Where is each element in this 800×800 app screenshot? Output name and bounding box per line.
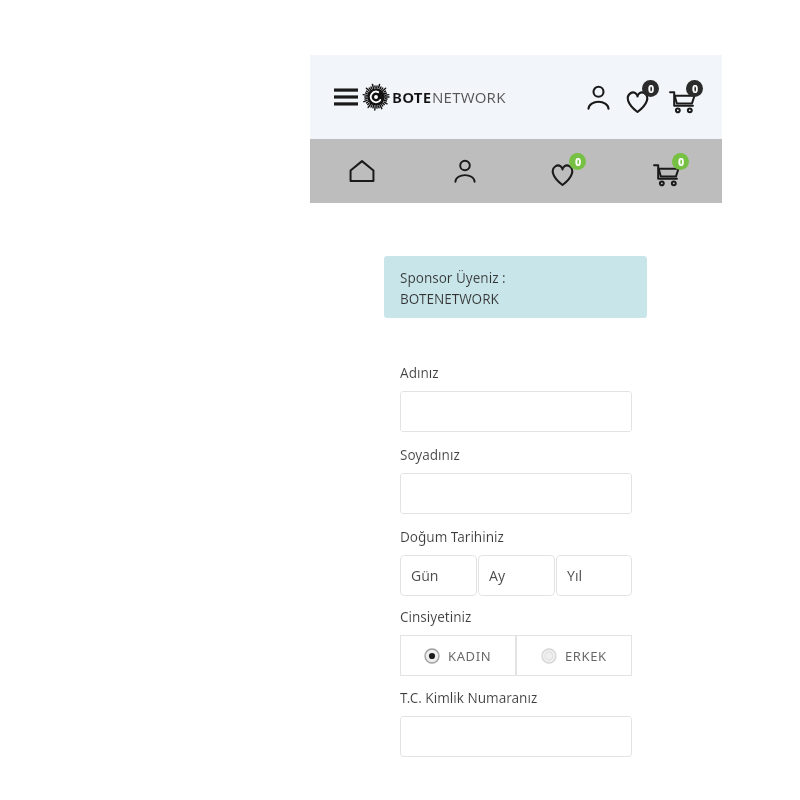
button[interactable]: Ay — [478, 555, 555, 596]
button[interactable]: Cart, 0 items — [664, 75, 708, 119]
button[interactable] — [400, 473, 632, 514]
button[interactable] — [400, 391, 632, 432]
staticText: 0 — [678, 155, 684, 169]
staticText: KADIN — [448, 647, 492, 665]
button[interactable]: Account — [576, 75, 620, 119]
staticText: Soyadınız — [400, 446, 460, 464]
button[interactable]: ERKEK — [516, 635, 632, 676]
button[interactable]: Yıl — [556, 555, 632, 596]
staticText: ERKEK — [565, 647, 607, 665]
staticText: Gün — [411, 566, 439, 585]
staticText: Yıl — [567, 566, 583, 585]
staticText: 0 — [648, 82, 654, 96]
button[interactable] — [400, 716, 632, 757]
staticText: 0 — [575, 155, 581, 169]
staticText: 0 — [692, 82, 698, 96]
staticText: Sponsor Üyeniz : — [400, 269, 506, 287]
button[interactable]: Menu — [326, 77, 366, 117]
staticText: BOTENETWORK — [400, 290, 499, 308]
button[interactable]: Gün — [400, 555, 477, 596]
button[interactable]: BOTE — [363, 84, 506, 110]
staticText: BOTE — [392, 87, 432, 107]
button[interactable]: Favorites, 0 items — [516, 139, 619, 203]
button[interactable]: Cart, 0 items — [619, 139, 722, 203]
staticText: Ay — [489, 566, 506, 585]
staticText: Adınız — [400, 364, 439, 382]
staticText: NETWORK — [432, 87, 506, 107]
button[interactable]: Home — [310, 139, 413, 203]
button[interactable]: Favorites, 0 items — [620, 75, 664, 119]
button[interactable]: Account — [413, 139, 516, 203]
staticText: Doğum Tarihiniz — [400, 528, 504, 546]
button[interactable]: KADIN — [400, 635, 516, 676]
staticText: T.C. Kimlik Numaranız — [400, 689, 538, 707]
staticText: Cinsiyetiniz — [400, 608, 472, 626]
